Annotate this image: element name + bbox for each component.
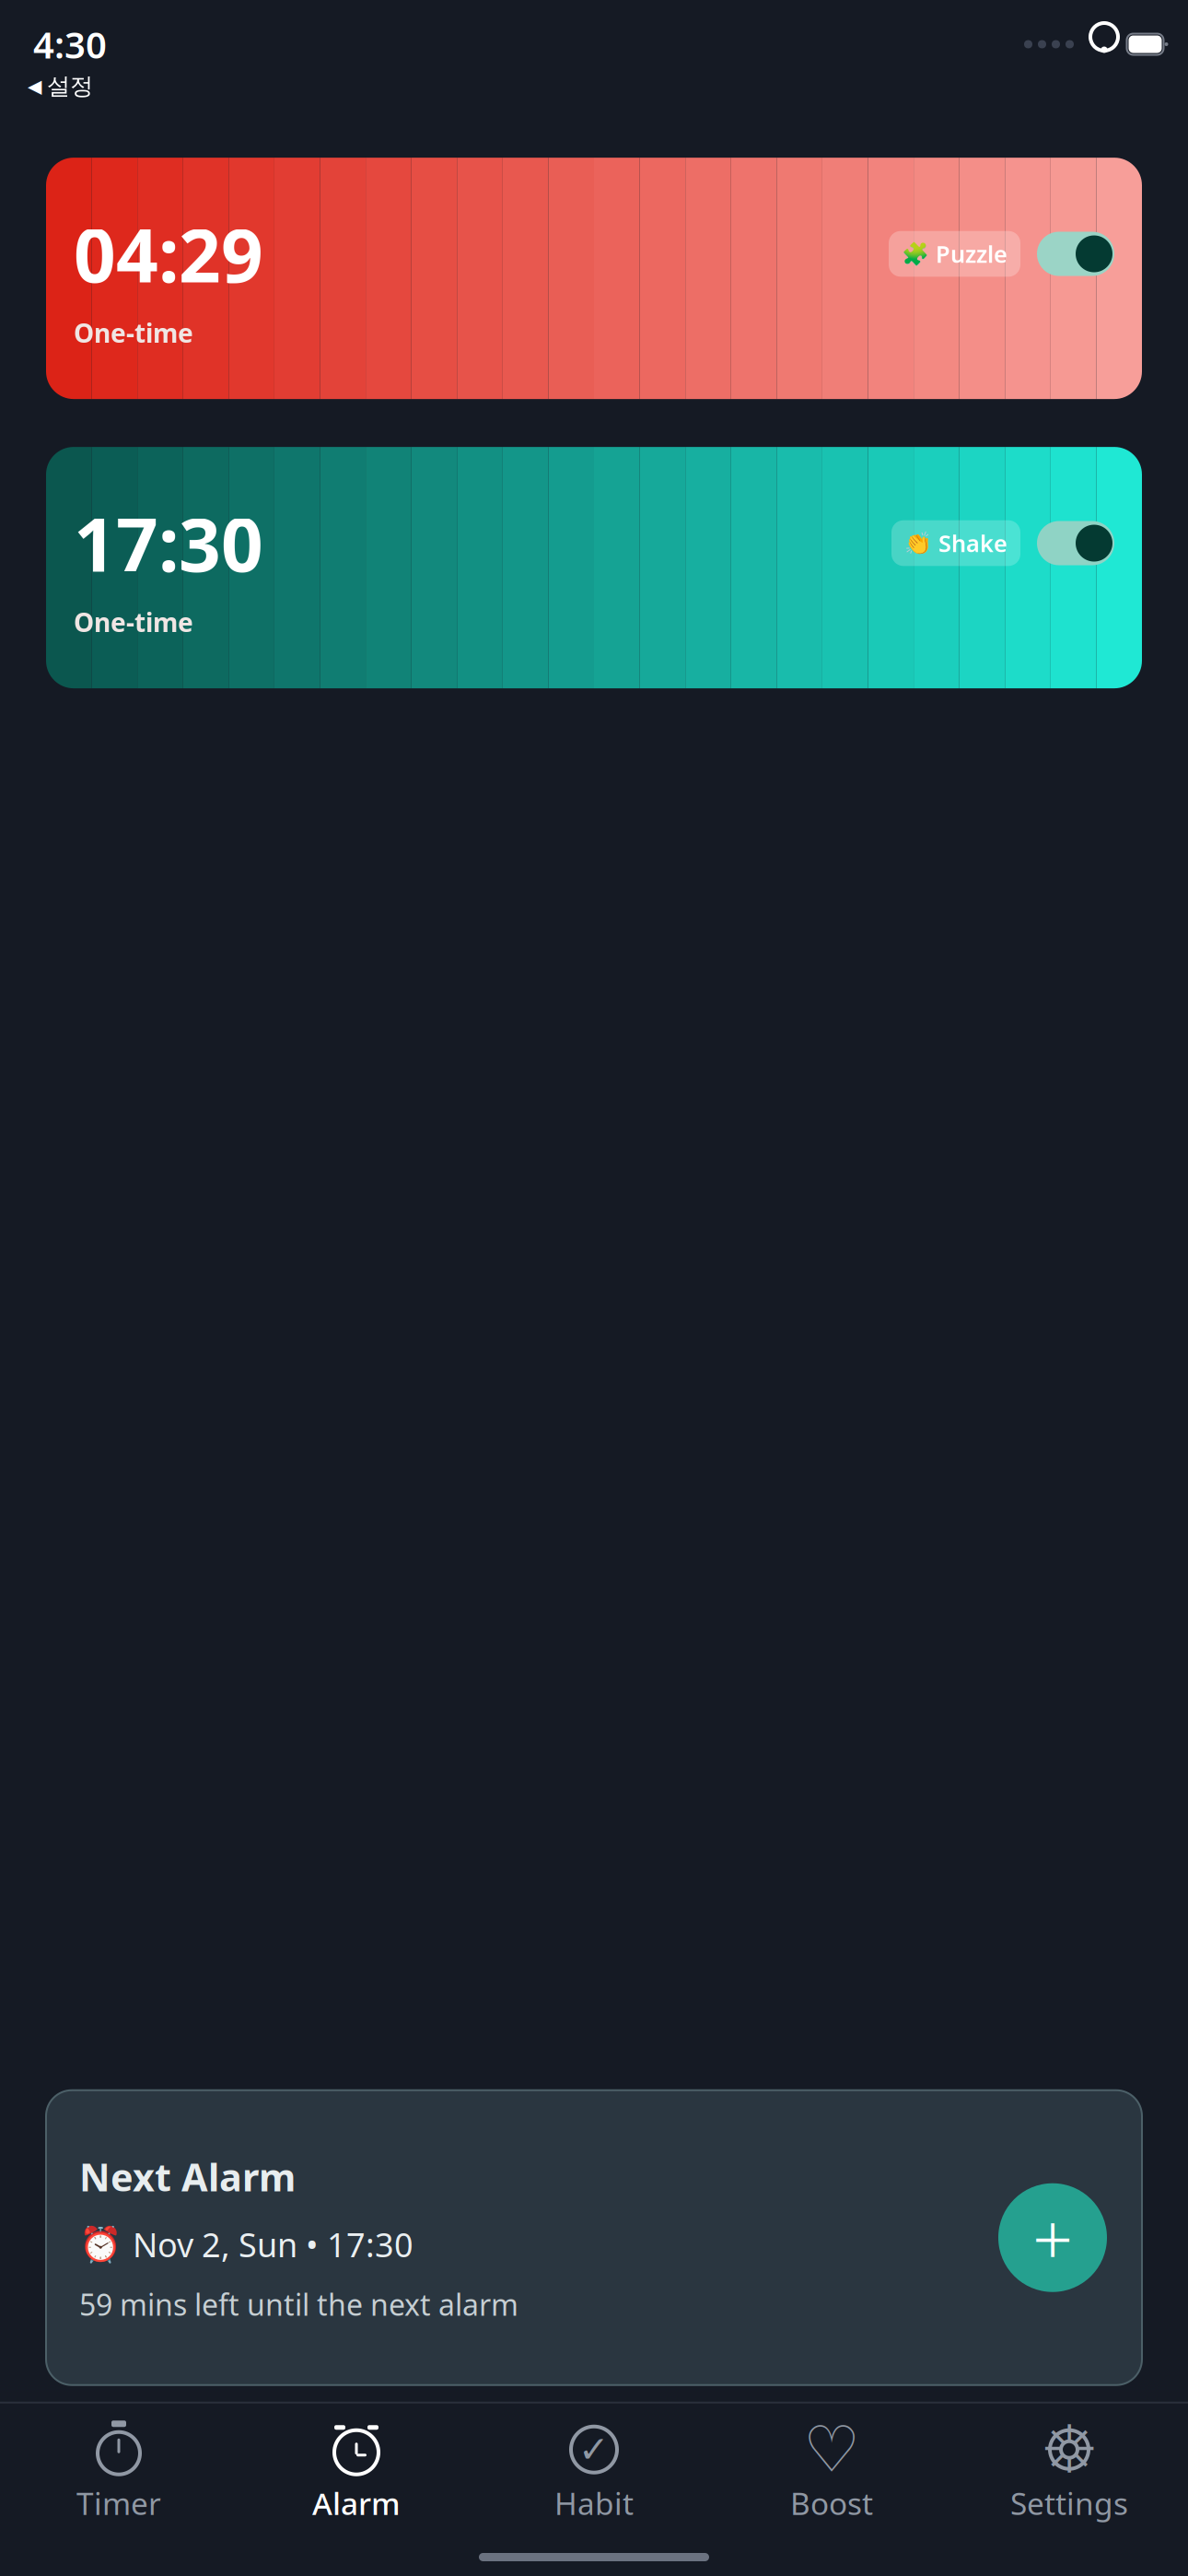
staticText: 59 mins left until the next alarm bbox=[79, 2285, 518, 2324]
staticText: Shake bbox=[938, 528, 1007, 559]
staticText: Alarm bbox=[312, 2483, 401, 2523]
staticText: ♡ bbox=[803, 2413, 860, 2486]
staticText: Habit bbox=[554, 2483, 634, 2523]
staticText: Puzzle bbox=[936, 238, 1007, 269]
button[interactable]: Toggle alarm 17:30 bbox=[1037, 521, 1114, 565]
button[interactable]: Back to 설정 bbox=[18, 68, 102, 104]
staticText: 🧩 bbox=[902, 241, 929, 266]
button[interactable]: Alarm bbox=[238, 2418, 475, 2527]
staticText: 👏 bbox=[904, 530, 932, 556]
staticText: Settings bbox=[1010, 2483, 1128, 2523]
staticText: ⏰ bbox=[79, 2225, 122, 2264]
staticText: Nov 2, Sun • 17:30 bbox=[133, 2222, 413, 2266]
staticText: One-time bbox=[74, 316, 193, 350]
staticText: One-time bbox=[74, 605, 193, 639]
staticText: Next Alarm bbox=[79, 2151, 296, 2202]
staticText: Boost bbox=[790, 2483, 873, 2523]
button[interactable]: 17:30 bbox=[46, 447, 1142, 688]
staticText: 설정 bbox=[47, 72, 93, 101]
button[interactable]: ✓ bbox=[475, 2418, 713, 2527]
button[interactable]: ✳ bbox=[950, 2418, 1188, 2527]
button[interactable]: Add alarm bbox=[998, 2183, 1107, 2292]
staticText: ✓ bbox=[578, 2429, 610, 2470]
staticText: Timer bbox=[76, 2483, 161, 2523]
button[interactable]: 04:29 bbox=[46, 158, 1142, 399]
staticText: + bbox=[1032, 2190, 1073, 2285]
staticText: 17:30 bbox=[74, 494, 263, 592]
staticText: ✳ bbox=[1042, 2412, 1097, 2487]
staticText: 04:29 bbox=[74, 205, 263, 303]
staticText: ◀ bbox=[28, 76, 41, 97]
button[interactable]: Toggle alarm 04:29 bbox=[1037, 232, 1114, 276]
button[interactable]: ♡ bbox=[713, 2418, 950, 2527]
button[interactable]: Timer bbox=[0, 2418, 238, 2527]
staticText: 4:30 bbox=[33, 20, 107, 69]
